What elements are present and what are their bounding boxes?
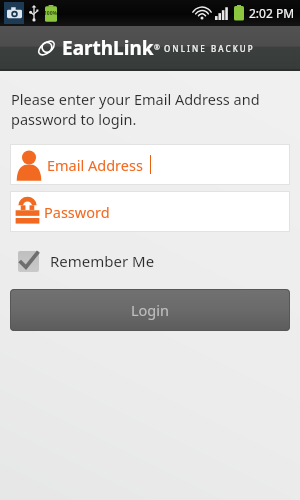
staticText: O N L I N E B A C K U P	[164, 43, 253, 54]
staticText: EarthLink	[62, 35, 154, 61]
button[interactable]: Password	[10, 191, 290, 232]
staticText: 100%	[44, 10, 58, 17]
button[interactable]: Email Address	[10, 144, 290, 185]
staticText: ®	[154, 43, 160, 53]
staticText: Remember Me	[50, 251, 155, 271]
button[interactable]: Login	[10, 289, 290, 331]
staticText: 2:02 PM	[249, 5, 295, 21]
staticText: Password	[44, 202, 110, 222]
staticText: Login	[131, 300, 169, 320]
staticText: Email Address	[47, 155, 143, 175]
button[interactable]: Remember Me	[9, 242, 155, 280]
staticText: Please enter your Email Address and pass…	[11, 89, 286, 129]
